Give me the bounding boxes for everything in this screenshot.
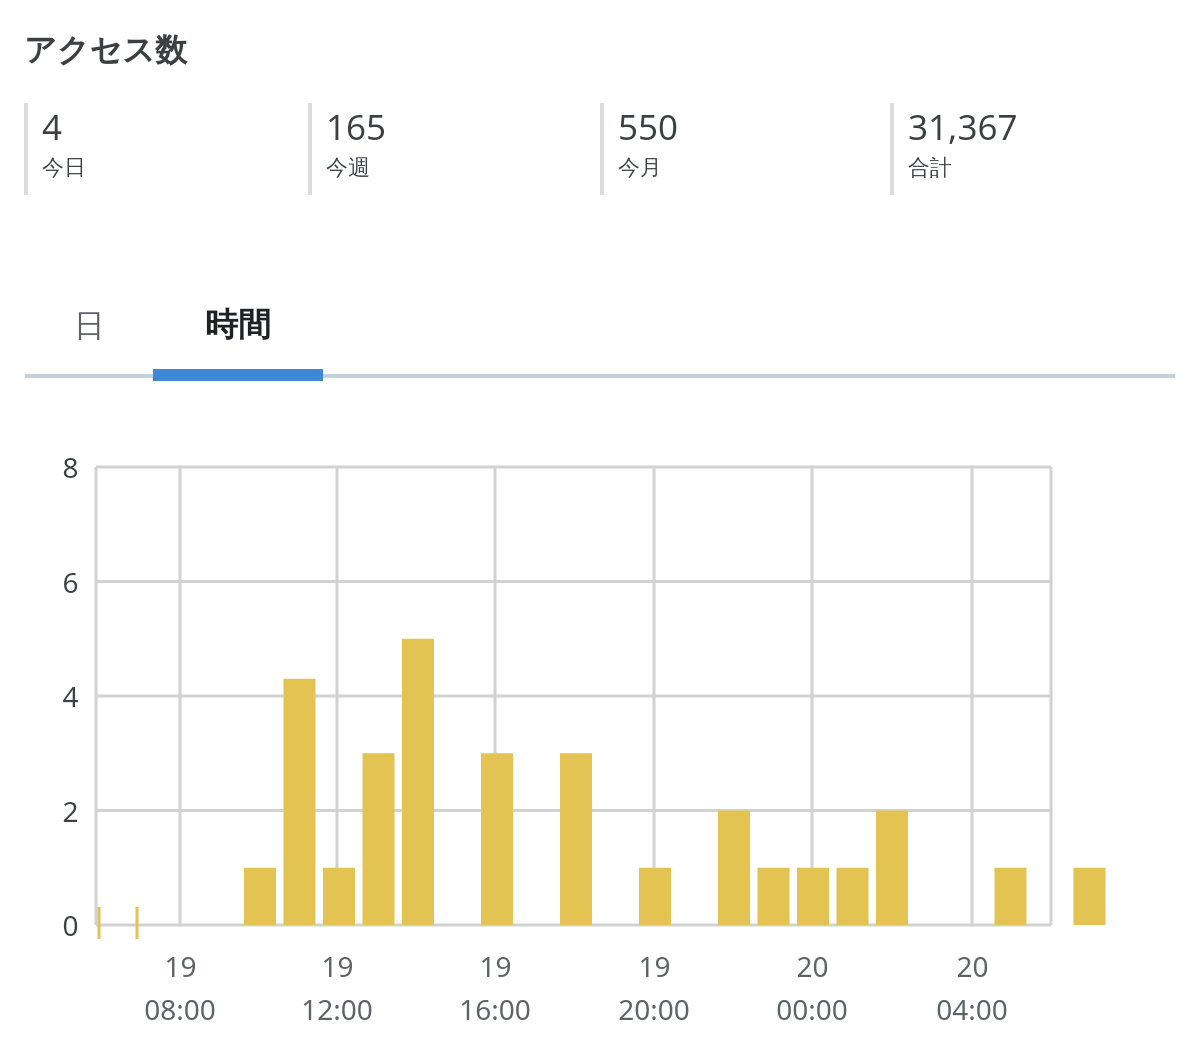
staticText: 19 [164,947,197,985]
staticText: 31,367 [908,103,1018,151]
staticText: 04:00 [936,990,1008,1028]
button[interactable]: 4 [24,103,294,195]
staticText: 16:00 [459,990,531,1028]
staticText: 19 [638,947,671,985]
staticText: 合計 [908,154,952,182]
staticText: 20 [796,947,829,985]
staticText: 日 [74,306,105,345]
staticText: 時間 [205,304,271,346]
staticText: 550 [618,103,679,151]
button[interactable]: 時間 [153,285,323,365]
staticText: 4 [42,103,63,151]
staticText: 19 [479,947,512,985]
staticText: 12:00 [301,990,373,1028]
button[interactable]: 550 [600,103,870,195]
button[interactable]: 日 [25,285,153,365]
staticText: 165 [326,103,387,151]
staticText: アクセス数 [24,30,187,70]
staticText: 08:00 [144,990,216,1028]
staticText: 8 [62,448,79,486]
staticText: 2 [62,792,79,830]
staticText: 今月 [618,154,662,182]
staticText: 20:00 [618,990,690,1028]
button[interactable]: 165 [308,103,578,195]
staticText: 今週 [326,154,370,182]
staticText: 0 [62,906,79,944]
staticText: 6 [62,563,79,601]
staticText: 今日 [42,154,86,182]
staticText: 00:00 [776,990,848,1028]
staticText: 20 [956,947,989,985]
staticText: 19 [321,947,354,985]
staticText: 4 [62,677,79,715]
button[interactable]: 31,367 [890,103,1160,195]
